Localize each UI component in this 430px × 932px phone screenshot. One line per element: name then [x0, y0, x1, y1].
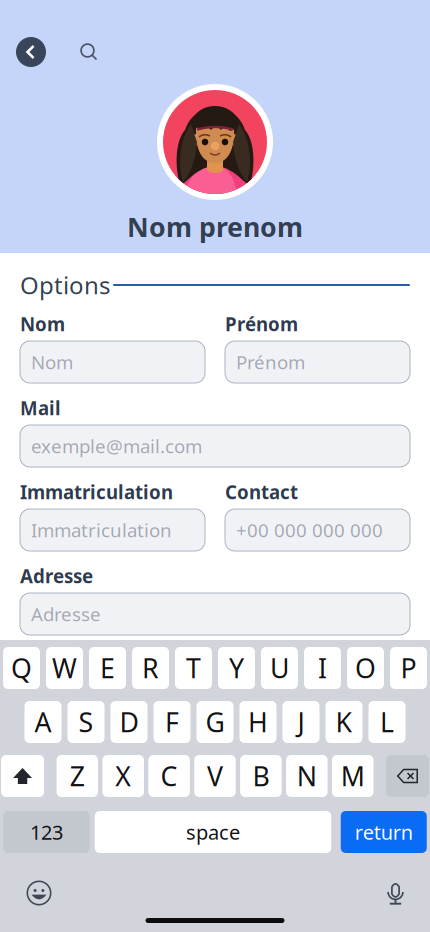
- button[interactable]: M: [332, 755, 373, 797]
- button[interactable]: F: [153, 701, 190, 743]
- button[interactable]: T: [175, 647, 212, 689]
- staticText: G: [205, 704, 224, 740]
- staticText: F: [165, 704, 179, 740]
- button[interactable]: P: [390, 647, 427, 689]
- button[interactable]: S: [67, 701, 104, 743]
- staticText: Prénom: [236, 350, 305, 374]
- button[interactable]: D: [110, 701, 147, 743]
- button[interactable]: Y: [218, 647, 255, 689]
- staticText: S: [78, 704, 93, 740]
- button[interactable]: A: [24, 701, 61, 743]
- button[interactable]: R: [132, 647, 169, 689]
- button[interactable]: G: [196, 701, 233, 743]
- button[interactable]: N: [286, 755, 328, 797]
- button[interactable]: W: [46, 647, 83, 689]
- staticText: Q: [11, 650, 32, 686]
- staticText: J: [297, 704, 304, 740]
- staticText: Contact: [225, 480, 298, 504]
- staticText: Nom: [31, 350, 73, 374]
- button[interactable]: X: [102, 755, 144, 797]
- staticText: N: [297, 758, 317, 794]
- staticText: Mail: [20, 396, 61, 420]
- button[interactable]: B: [240, 755, 282, 797]
- staticText: Immatriculation: [20, 480, 173, 504]
- staticText: Adresse: [31, 602, 101, 626]
- staticText: V: [207, 758, 223, 794]
- button[interactable]: V: [194, 755, 236, 797]
- button[interactable]: return: [341, 811, 427, 853]
- staticText: 123: [30, 819, 63, 845]
- staticText: Adresse: [20, 564, 93, 588]
- staticText: Z: [70, 758, 85, 794]
- staticText: X: [115, 758, 131, 794]
- button[interactable]: space: [95, 811, 331, 853]
- staticText: H: [248, 704, 268, 740]
- button[interactable]: 123: [3, 811, 90, 853]
- staticText: Y: [229, 650, 244, 686]
- staticText: exemple@mail.com: [31, 434, 202, 458]
- staticText: W: [52, 650, 77, 686]
- staticText: R: [142, 650, 159, 686]
- staticText: space: [186, 819, 240, 845]
- button[interactable]: K: [325, 701, 362, 743]
- staticText: M: [341, 758, 365, 794]
- staticText: O: [355, 650, 376, 686]
- staticText: Immatriculation: [31, 518, 172, 542]
- staticText: C: [161, 758, 178, 794]
- button[interactable]: L: [368, 701, 405, 743]
- staticText: Options: [20, 269, 110, 301]
- button[interactable]: Dictate: [387, 877, 404, 909]
- button[interactable]: J: [282, 701, 319, 743]
- staticText: B: [252, 758, 269, 794]
- staticText: A: [34, 704, 51, 740]
- button[interactable]: H: [239, 701, 276, 743]
- staticText: Nom prenom: [127, 209, 303, 244]
- button[interactable]: U: [261, 647, 298, 689]
- staticText: Prénom: [225, 312, 298, 336]
- staticText: E: [100, 650, 115, 686]
- staticText: U: [270, 650, 289, 686]
- staticText: L: [380, 704, 394, 740]
- button[interactable]: I: [304, 647, 341, 689]
- button[interactable]: Shift: [1, 755, 44, 797]
- staticText: K: [335, 704, 352, 740]
- button[interactable]: C: [148, 755, 190, 797]
- staticText: T: [186, 650, 201, 686]
- button[interactable]: Q: [3, 647, 40, 689]
- staticText: Nom: [20, 312, 65, 336]
- staticText: D: [119, 704, 138, 740]
- staticText: +00 000 000 000: [236, 518, 383, 542]
- staticText: P: [400, 650, 416, 686]
- button[interactable]: Search: [74, 37, 104, 67]
- staticText: I: [318, 650, 327, 686]
- button[interactable]: Back: [16, 37, 46, 67]
- button[interactable]: E: [89, 647, 126, 689]
- button[interactable]: O: [347, 647, 384, 689]
- button[interactable]: Emoji keyboard: [26, 877, 52, 909]
- button[interactable]: Z: [57, 755, 98, 797]
- button[interactable]: Delete: [386, 755, 429, 797]
- staticText: return: [355, 819, 413, 845]
